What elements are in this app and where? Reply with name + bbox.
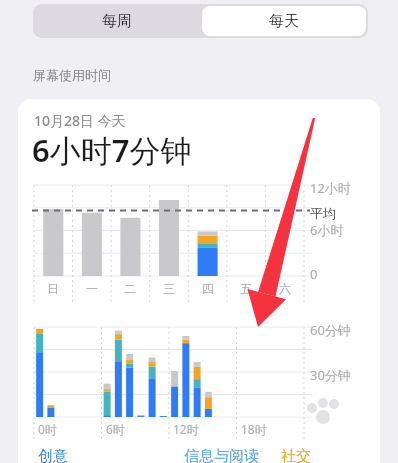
button[interactable]: 10月28日 今天: [18, 99, 380, 463]
staticText: 四: [200, 281, 216, 296]
staticText: 信息与阅读: [184, 447, 259, 463]
staticText: 12时: [173, 421, 199, 437]
staticText: 平均: [310, 205, 336, 221]
staticText: 6小时7分钟: [32, 129, 192, 171]
staticText: 10月28日 今天: [34, 111, 126, 130]
staticText: 二: [122, 281, 138, 296]
staticText: 0: [310, 265, 318, 283]
staticText: 一: [84, 281, 100, 296]
staticText: 每天: [269, 12, 299, 31]
staticText: 创意: [38, 447, 68, 463]
staticText: 12小时: [310, 179, 351, 197]
staticText: 6时: [106, 421, 125, 437]
staticText: 社交: [281, 447, 311, 463]
staticText: 6小时: [310, 221, 344, 239]
staticText: 0时: [38, 421, 57, 437]
staticText: 18时: [241, 421, 267, 437]
staticText: 五: [238, 281, 254, 296]
staticText: 六: [277, 281, 293, 296]
button[interactable]: 每天: [202, 6, 366, 36]
button[interactable]: 每周: [33, 4, 200, 38]
staticText: 三: [161, 281, 177, 296]
staticText: 日: [45, 281, 61, 296]
staticText: 60分钟: [310, 321, 351, 339]
staticText: 每周: [102, 12, 132, 31]
staticText: 30分钟: [310, 366, 351, 384]
staticText: 屏幕使用时间: [33, 67, 111, 83]
